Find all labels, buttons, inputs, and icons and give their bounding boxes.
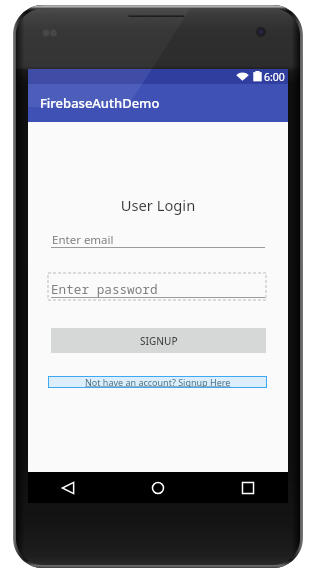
staticText: SIGNUP xyxy=(140,334,178,348)
button[interactable]: Recent apps xyxy=(226,473,270,503)
button[interactable]: Back xyxy=(46,473,90,503)
staticText: Enter password xyxy=(51,280,158,297)
button[interactable]: Not have an account? Signup Here xyxy=(48,376,267,388)
button[interactable]: SIGNUP xyxy=(51,328,266,353)
staticText: FirebaseAuthDemo xyxy=(40,94,160,112)
staticText: Enter email xyxy=(52,232,114,248)
button[interactable]: Home xyxy=(136,473,180,503)
staticText: 6:00 xyxy=(264,70,285,84)
staticText: Not have an account? Signup Here xyxy=(85,376,231,388)
staticText: User Login xyxy=(28,195,288,215)
